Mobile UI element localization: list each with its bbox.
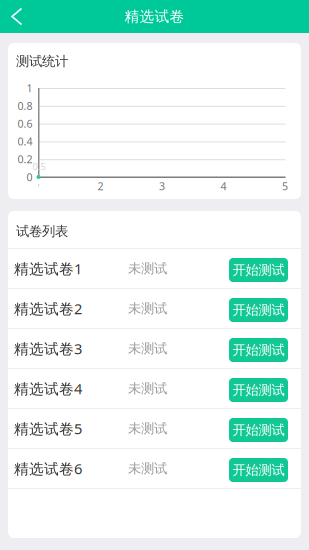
staticText: 精选试卷6 (14, 459, 82, 478)
staticText: 开始测试 (232, 262, 284, 278)
button[interactable]: 精选试卷1 (8, 249, 301, 288)
staticText: 3 (159, 179, 165, 193)
staticText: 未测试 (128, 300, 167, 317)
button[interactable]: 返回 (0, 0, 38, 32)
staticText: 0.6 (17, 116, 32, 131)
staticText: 0.5 (32, 160, 45, 173)
staticText: 未测试 (128, 460, 167, 477)
staticText: 5 (282, 179, 288, 193)
staticText: 0.2 (17, 152, 32, 166)
staticText: 开始测试 (232, 462, 284, 478)
staticText: 0.8 (17, 99, 32, 113)
staticText: 精选试卷4 (14, 379, 82, 398)
staticText: 精选试卷 (124, 7, 184, 25)
staticText: 开始测试 (232, 422, 284, 438)
staticText: 精选试卷2 (14, 299, 82, 318)
staticText: 测试统计 (16, 53, 68, 69)
staticText: 未测试 (128, 260, 167, 277)
staticText: 开始测试 (232, 382, 284, 398)
button[interactable]: 精选试卷6 (8, 449, 301, 488)
button[interactable]: 精选试卷4 (8, 369, 301, 408)
staticText: 试卷列表 (16, 223, 68, 239)
button[interactable]: 精选试卷2 (8, 289, 301, 328)
staticText: 未测试 (128, 420, 167, 437)
staticText: 开始测试 (232, 342, 284, 358)
staticText: 精选试卷5 (14, 419, 82, 438)
staticText: 0 (26, 170, 32, 184)
button[interactable]: 精选试卷5 (8, 409, 301, 448)
button[interactable]: 精选试卷3 (8, 329, 301, 368)
staticText: 未测试 (128, 380, 167, 397)
staticText: 4 (220, 179, 226, 193)
staticText: 1 (26, 81, 32, 95)
staticText: 精选试卷1 (14, 259, 82, 278)
staticText: 未测试 (128, 340, 167, 357)
staticText: 开始测试 (232, 302, 284, 318)
staticText: 0.4 (17, 134, 32, 148)
staticText: 2 (97, 179, 103, 193)
staticText: 精选试卷3 (14, 339, 82, 358)
